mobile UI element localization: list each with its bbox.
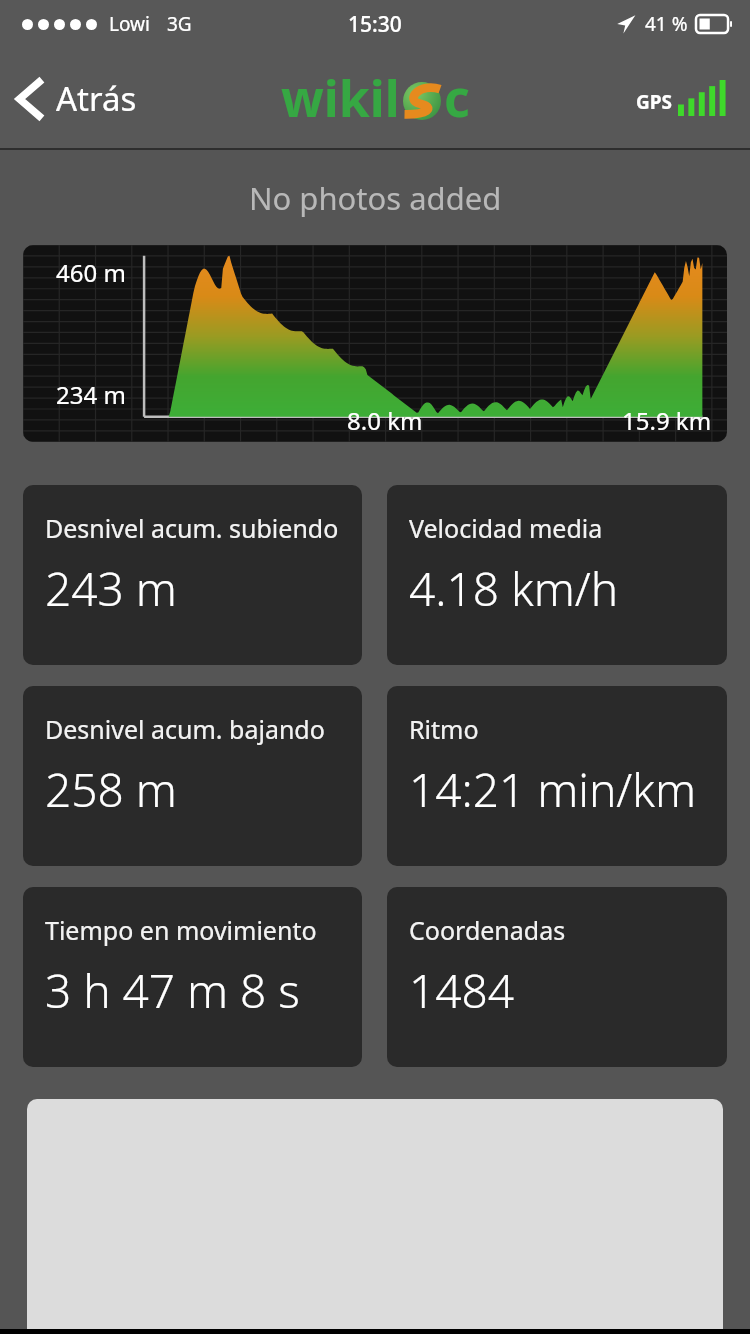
button[interactable]: Coordenadas [387, 887, 727, 1067]
staticText: 14:21 min/km [409, 758, 697, 821]
button[interactable]: Desnivel acum. bajando [23, 686, 362, 866]
staticText: Ritmo [409, 712, 479, 746]
staticText: 3 h 47 m 8 s [45, 959, 300, 1022]
other: GPS signal [636, 80, 730, 116]
staticText: 15:30 [348, 10, 402, 39]
button[interactable]: Tiempo en movimiento [23, 887, 362, 1067]
button[interactable]: Ritmo [387, 686, 727, 866]
staticText: 234 m [56, 378, 126, 411]
button[interactable]: Velocidad media [387, 485, 727, 665]
staticText: Tiempo en movimiento [45, 913, 317, 947]
staticText: Desnivel acum. subiendo [45, 511, 339, 545]
staticText: 15.9 km [622, 404, 712, 437]
staticText: wikil [281, 64, 400, 132]
button[interactable]: Atrás [0, 62, 155, 135]
staticText: Lowi [109, 11, 150, 37]
staticText: 460 m [56, 256, 126, 289]
staticText: GPS [636, 89, 673, 115]
staticText: Atrás [56, 76, 137, 121]
staticText: Coordenadas [409, 913, 566, 947]
button[interactable]: Desnivel acum. subiendo [23, 485, 362, 665]
staticText: 8.0 km [347, 404, 423, 437]
staticText: No photos added [249, 177, 502, 219]
staticText: Velocidad media [409, 511, 603, 545]
staticText: 243 m [45, 557, 177, 620]
staticText: 258 m [45, 758, 177, 821]
staticText: 3G [167, 11, 192, 37]
staticText: 41 % [645, 11, 688, 37]
staticText: c [444, 64, 470, 132]
staticText: 4.18 km/h [409, 557, 619, 620]
staticText: Desnivel acum. bajando [45, 712, 325, 746]
button[interactable]: 460 m [23, 245, 727, 442]
staticText: 1484 [409, 959, 515, 1022]
